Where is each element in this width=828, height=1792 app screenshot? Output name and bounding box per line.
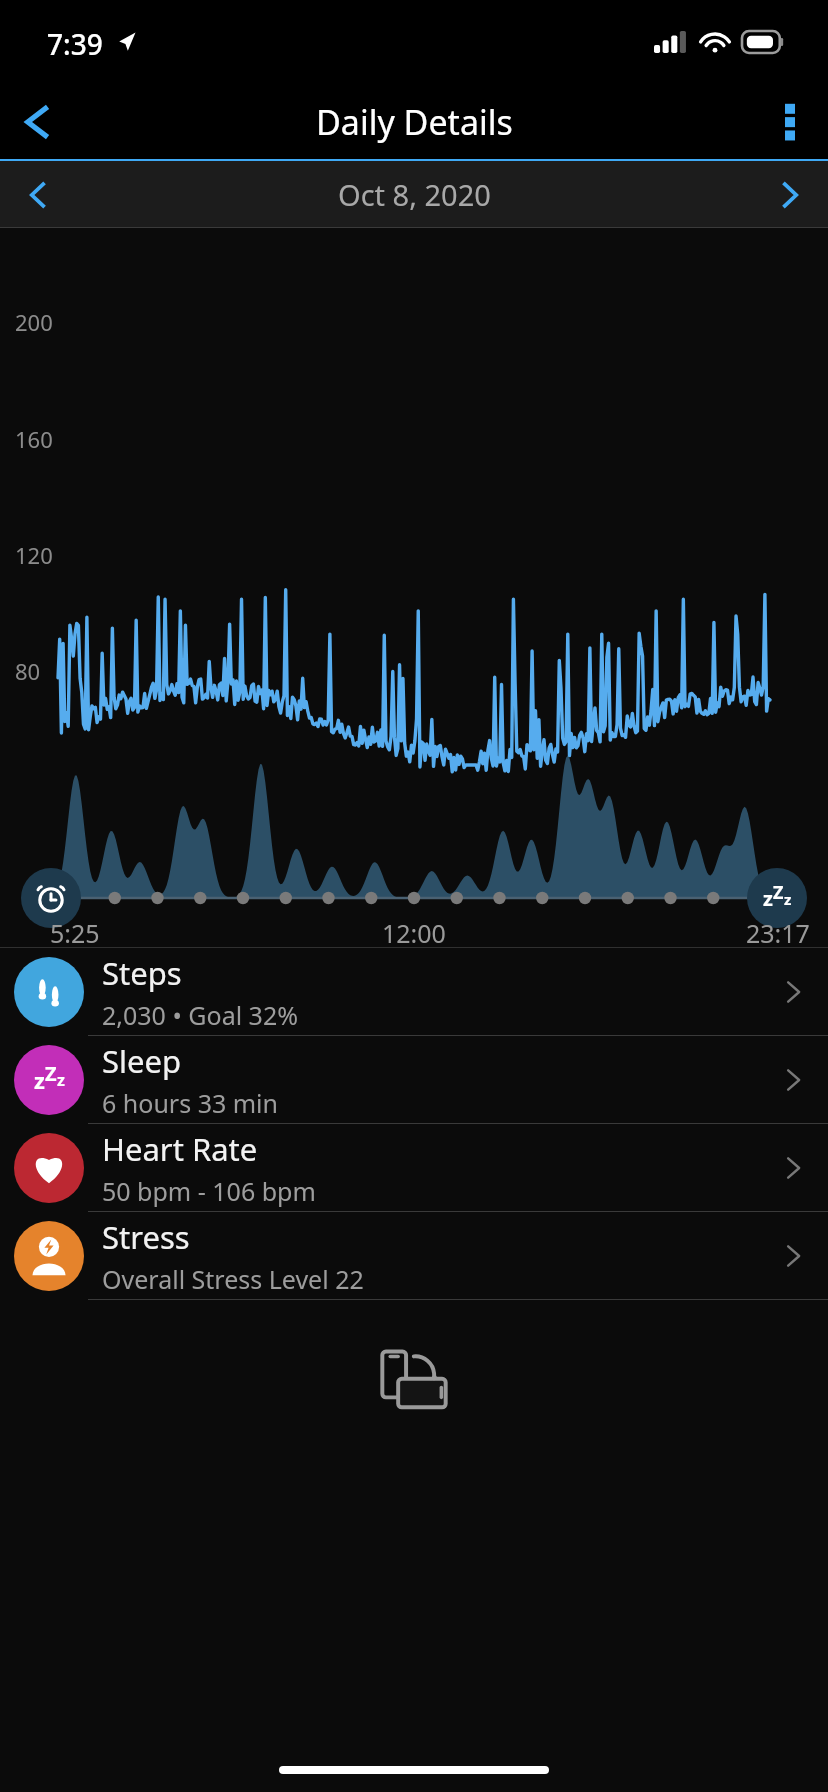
staticText: z (34, 1065, 45, 1095)
staticText: z (57, 1069, 65, 1091)
staticText: Steps (102, 952, 182, 994)
staticText: Stress (102, 1216, 190, 1258)
other: Rotate device (378, 1349, 450, 1411)
staticText: 80 (15, 656, 41, 686)
button[interactable]: Steps (0, 948, 828, 1035)
staticText: Sleep (102, 1040, 182, 1082)
staticText: 6 hours 33 min (102, 1086, 279, 1120)
staticText: 2,030 • Goal 32% (102, 998, 298, 1032)
button[interactable]: Next day (752, 161, 828, 228)
staticText: 120 (15, 540, 53, 570)
button[interactable]: Stress (0, 1212, 828, 1299)
staticText: 23:17 (746, 916, 810, 950)
staticText: Heart Rate (102, 1128, 258, 1170)
staticText: 160 (15, 424, 53, 454)
staticText: 7:39 (47, 25, 103, 63)
staticText: 200 (15, 307, 53, 337)
button[interactable]: z (0, 1036, 828, 1123)
button[interactable]: More options (752, 84, 828, 160)
button[interactable]: Back (0, 84, 76, 160)
staticText: Z (773, 880, 784, 905)
button[interactable]: Previous day (0, 161, 76, 228)
staticText: Z (45, 1060, 57, 1087)
staticText: 50 bpm - 106 bpm (102, 1174, 316, 1208)
staticText: Oct 8, 2020 (338, 175, 491, 214)
staticText: Overall Stress Level 22 (102, 1262, 364, 1296)
staticText: z (763, 885, 773, 912)
staticText: Daily Details (316, 99, 513, 145)
button[interactable]: Heart Rate (0, 1124, 828, 1211)
staticText: z (784, 889, 792, 909)
staticText: 12:00 (382, 916, 446, 950)
staticText: 5:25 (50, 916, 100, 950)
